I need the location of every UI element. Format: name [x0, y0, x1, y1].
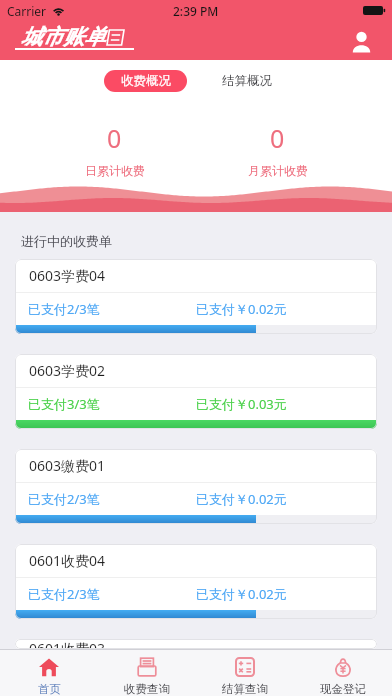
staticText: 0	[270, 121, 285, 155]
button[interactable]: 0603缴费01	[15, 449, 377, 524]
button[interactable]: 0601收费04	[15, 544, 377, 619]
button[interactable]: 收费查询	[98, 650, 196, 696]
button[interactable]: 结算概况	[216, 70, 278, 92]
staticText: 城市账单	[21, 24, 105, 50]
staticText: 已支付3/3笔	[28, 395, 100, 413]
staticText: 0	[107, 121, 122, 155]
staticText: 2:39 PM	[173, 3, 219, 19]
staticText: 已支付￥0.02元	[196, 490, 287, 508]
staticText: 结算概况	[222, 73, 272, 89]
button[interactable]: 首页	[0, 650, 98, 696]
staticText: 收费查询	[124, 682, 170, 696]
button[interactable]: 现金登记	[294, 650, 392, 696]
staticText: 已支付￥0.03元	[196, 395, 287, 413]
staticText: 日累计收费	[85, 163, 145, 178]
button[interactable]: 0603学费02	[15, 354, 377, 429]
staticText: Carrier	[7, 3, 47, 19]
staticText: 结算查询	[222, 682, 268, 696]
button[interactable]: 结算查询	[196, 650, 294, 696]
button[interactable]: 收费概况	[104, 70, 187, 92]
staticText: 进行中的收费单	[21, 233, 112, 249]
staticText: 收费概况	[121, 73, 171, 89]
staticText: 已支付2/3笔	[28, 585, 100, 603]
staticText: 0601收费03	[29, 639, 106, 649]
staticText: 已支付2/3笔	[28, 490, 100, 508]
staticText: 0603缴费01	[29, 456, 106, 475]
staticText: 月累计收费	[248, 163, 308, 178]
button[interactable]: 0603学费04	[15, 259, 377, 334]
staticText: 首页	[38, 682, 61, 696]
staticText: 已支付2/3笔	[28, 300, 100, 318]
staticText: 已支付￥0.02元	[196, 300, 287, 318]
button[interactable]: Profile	[344, 24, 378, 58]
staticText: 0603学费02	[29, 361, 106, 380]
staticText: 已支付￥0.02元	[196, 585, 287, 603]
staticText: 0601收费04	[29, 551, 106, 570]
staticText: 现金登记	[320, 682, 366, 696]
button[interactable]: 0601收费03	[15, 639, 377, 649]
staticText: 0603学费04	[29, 266, 106, 285]
